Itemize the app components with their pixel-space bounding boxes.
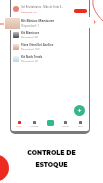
staticText: CONTROLE DE (27, 149, 76, 157)
button[interactable]: Produtos (27, 119, 41, 130)
staticText: Gel Revitalizante - Mão de Seda E... (21, 5, 64, 9)
staticText: Disponível: 45 (21, 60, 39, 62)
staticText: Vendas (62, 125, 69, 128)
staticText: Kit Básico Manicure (21, 18, 55, 23)
staticText: Perfil (78, 125, 83, 128)
button[interactable]: Fibra Vitro/Gel Acrílico (13, 43, 86, 50)
staticText: Fibra Vitro/Gel Acrílico (21, 43, 54, 47)
button[interactable]: Gel Revitalizante - Mão de Seda E... (13, 5, 87, 13)
button[interactable]: Kit Nails Tends (13, 55, 86, 62)
staticText: Produtos (30, 125, 39, 128)
staticText: Kit Manicure (21, 31, 40, 35)
staticText: Kit Nails Tends (21, 55, 43, 59)
staticText: Disponível: 250 (21, 48, 40, 50)
staticText: ESTOQUE (35, 161, 68, 169)
button[interactable]: Estoque (43, 119, 57, 130)
staticText: Disponível: 32 (21, 10, 37, 13)
button[interactable]: Vendas (58, 119, 72, 130)
button[interactable]: Perfil (73, 119, 87, 130)
button[interactable]: Comprar (74, 9, 87, 13)
staticText: Disponível: 90 (21, 36, 39, 38)
button[interactable]: Kit Básico Manicure (21, 18, 69, 28)
button[interactable]: Kit Manicure (13, 31, 86, 38)
button[interactable]: Início (12, 119, 26, 130)
staticText: Início (16, 125, 22, 128)
staticText: Disponível: 1 (21, 24, 39, 28)
button[interactable]: Produto em destaque (5, 18, 20, 29)
button[interactable]: Adicionar (74, 105, 85, 116)
